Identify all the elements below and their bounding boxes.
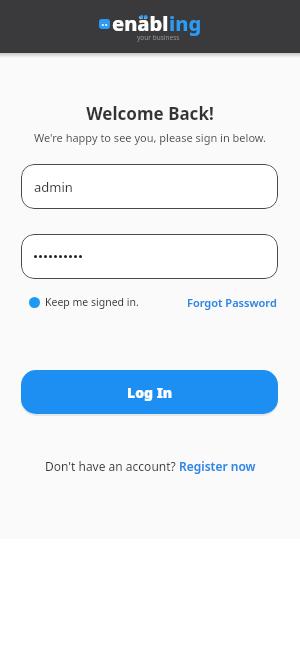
staticText: Welcome Back! (0, 102, 300, 125)
staticText: ing (169, 10, 202, 37)
staticText: your business (137, 33, 180, 42)
button[interactable]: Keep me signed in. (29, 295, 139, 309)
button[interactable]: Forgot Password (187, 295, 277, 310)
staticText: Don't have an account? (45, 458, 179, 474)
staticText: Log In (127, 383, 173, 402)
button[interactable]: Log In (21, 370, 278, 414)
button[interactable]: admin (21, 164, 278, 209)
staticText: admin (34, 178, 73, 196)
staticText: We're happy to see you, please sign in b… (0, 130, 300, 145)
staticText: enäbl (112, 10, 169, 37)
button[interactable] (21, 234, 278, 279)
button[interactable]: Register now (179, 458, 256, 474)
staticText: Keep me signed in. (45, 295, 139, 309)
